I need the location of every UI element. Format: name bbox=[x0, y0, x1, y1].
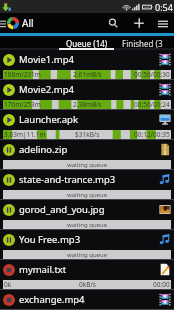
staticText: 2.61mB/s bbox=[73, 70, 102, 79]
staticText: 0:54 bbox=[155, 1, 173, 13]
other: Navigation drawer bbox=[0, 19, 6, 28]
button[interactable]: gorod_and_you.jpg bbox=[0, 200, 174, 230]
staticText: Movie2.mp4 bbox=[19, 83, 74, 96]
button[interactable]: More options bbox=[152, 13, 174, 33]
staticText: mymail.txt bbox=[19, 263, 67, 276]
staticText: 00:12/00:35 bbox=[134, 130, 170, 139]
button[interactable]: exchange.mp4 bbox=[0, 290, 174, 310]
staticText: Finished (3 bbox=[122, 38, 163, 49]
button[interactable]: mymail.txt bbox=[0, 260, 174, 290]
staticText: You Free.mp3 bbox=[19, 233, 81, 246]
button[interactable]: Movie2.mp4 bbox=[0, 80, 174, 110]
staticText: Queue (14) bbox=[66, 38, 108, 49]
staticText: 168m/231m bbox=[4, 70, 41, 79]
button[interactable]: Finished (3 bbox=[122, 36, 174, 50]
staticText: All bbox=[22, 16, 34, 30]
button[interactable]: adelino.zip bbox=[0, 140, 174, 170]
button[interactable]: Launcher.apk bbox=[0, 110, 174, 140]
staticText: Launcher.apk bbox=[19, 113, 79, 126]
staticText: 3.03m|11.1m bbox=[4, 130, 46, 139]
staticText: exchange.mp4 bbox=[19, 293, 85, 306]
staticText: 0kB/s bbox=[79, 280, 96, 289]
button[interactable]: state-and-trance.mp3 bbox=[0, 170, 174, 200]
button[interactable]: Movie1.mp4 bbox=[0, 50, 174, 80]
staticText: 2.38mB/s bbox=[73, 100, 102, 109]
staticText: waiting queue bbox=[3, 191, 171, 199]
staticText: 00:56/00:24 bbox=[134, 100, 170, 109]
staticText: waiting queue bbox=[3, 251, 171, 259]
staticText: gorod_and_you.jpg bbox=[19, 203, 105, 216]
staticText: 00:00 bbox=[153, 280, 170, 289]
staticText: Movie1.mp4 bbox=[19, 53, 74, 66]
staticText: waiting queue bbox=[3, 221, 171, 229]
staticText: waiting queue bbox=[3, 161, 171, 169]
button[interactable]: Search bbox=[100, 13, 126, 33]
staticText: 0k bbox=[4, 280, 12, 289]
staticText: $31kB/s bbox=[75, 130, 100, 139]
staticText: 00:56/00:30 bbox=[134, 70, 170, 79]
button[interactable]: Queue (14) bbox=[59, 36, 114, 50]
staticText: 176m/253m bbox=[4, 100, 41, 109]
button[interactable]: Navigation drawer bbox=[0, 13, 34, 33]
button[interactable]: Add download bbox=[126, 13, 152, 33]
button[interactable]: You Free.mp3 bbox=[0, 230, 174, 260]
staticText: state-and-trance.mp3 bbox=[19, 173, 116, 186]
staticText: adelino.zip bbox=[19, 143, 68, 156]
